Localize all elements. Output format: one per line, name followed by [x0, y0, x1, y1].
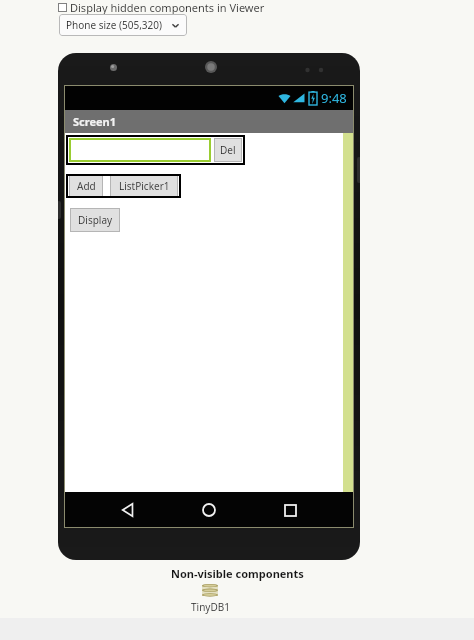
staticText: Del	[220, 143, 236, 157]
button[interactable]: Display hidden components in Viewer	[58, 0, 265, 15]
staticText: TinyDB1	[191, 600, 230, 614]
button[interactable]: Phone size (505,320)	[59, 14, 187, 36]
staticText: Screen1	[73, 114, 117, 129]
button[interactable]: Del	[214, 138, 242, 162]
button[interactable]: Recent apps	[273, 493, 307, 527]
staticText: Non-visible components	[171, 566, 304, 581]
button[interactable]: Add	[69, 174, 103, 198]
button[interactable]: ListPicker1	[110, 174, 178, 198]
staticText: Add	[77, 179, 96, 193]
button[interactable]: Add	[66, 174, 181, 198]
staticText: Display hidden components in Viewer	[70, 0, 265, 15]
staticText: 9:48	[321, 89, 347, 107]
button[interactable]: Screen1	[64, 110, 354, 133]
staticText: ListPicker1	[119, 179, 170, 193]
button[interactable]: Home	[192, 493, 226, 527]
staticText: Display	[78, 213, 113, 227]
button[interactable]: Display	[70, 208, 120, 232]
staticText: Phone size (505,320)	[66, 18, 163, 32]
button[interactable]: TinyDB1	[182, 584, 238, 614]
button[interactable]: Back	[111, 493, 145, 527]
button[interactable]	[69, 138, 211, 162]
button[interactable]: Del	[66, 135, 245, 165]
